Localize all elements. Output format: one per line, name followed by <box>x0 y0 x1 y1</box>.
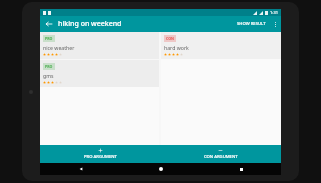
staticText: 1:31 <box>270 10 278 15</box>
button[interactable]: Home <box>121 163 201 175</box>
staticText: hard work <box>164 44 189 51</box>
button[interactable]: Navigate up <box>40 16 58 32</box>
staticText: CON ARGUMENT <box>204 154 238 160</box>
button[interactable]: CON ARGUMENT <box>160 145 281 163</box>
staticText: hiking on weekend <box>58 19 233 29</box>
staticText: SHOW RESULT <box>237 21 266 27</box>
button[interactable]: More options <box>270 16 281 32</box>
button[interactable]: Recent apps <box>201 163 281 175</box>
button[interactable]: PRO <box>40 60 159 87</box>
staticText: PRO ARGUMENT <box>84 154 117 160</box>
button[interactable]: SHOW RESULT <box>233 16 270 32</box>
staticText: nice weather <box>43 44 75 51</box>
staticText: gms <box>43 72 54 79</box>
button[interactable]: Back <box>40 163 121 175</box>
staticText: CON <box>166 36 174 41</box>
button[interactable]: PRO <box>40 32 159 59</box>
button[interactable]: PRO ARGUMENT <box>40 145 160 163</box>
staticText: PRO <box>45 36 53 41</box>
button[interactable]: CON <box>161 32 281 59</box>
staticText: PRO <box>45 64 53 69</box>
